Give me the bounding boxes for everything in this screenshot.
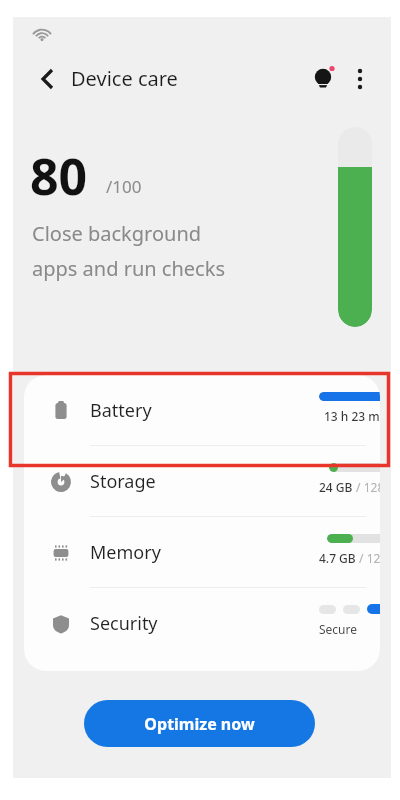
button[interactable]: Back xyxy=(27,59,67,99)
staticText: Security xyxy=(90,611,158,636)
staticText: /100 xyxy=(106,175,142,198)
staticText: 80 xyxy=(30,142,88,198)
staticText: 24 GB xyxy=(319,479,353,495)
button[interactable]: Memory xyxy=(24,517,380,588)
staticText: apps and run checks xyxy=(32,255,225,282)
button[interactable]: More options xyxy=(338,59,378,99)
staticText: / 128 GB xyxy=(353,479,380,495)
staticText: Battery xyxy=(90,398,152,423)
button[interactable]: Battery xyxy=(24,375,380,446)
button[interactable]: Tips xyxy=(305,59,345,99)
staticText: 4.7 GB xyxy=(319,550,356,566)
button[interactable]: Storage xyxy=(24,446,380,517)
staticText: Optimize now xyxy=(144,713,255,735)
staticText: Storage xyxy=(90,469,156,494)
staticText: / 12 GB xyxy=(356,550,380,566)
staticText: 13 h 23 m xyxy=(324,408,380,424)
button[interactable]: Security xyxy=(24,588,380,659)
button[interactable]: Optimize now xyxy=(84,700,315,747)
staticText: Close background xyxy=(32,220,202,247)
staticText: Secure xyxy=(319,621,380,637)
staticText: Device care xyxy=(71,65,178,92)
staticText: Memory xyxy=(90,540,161,565)
